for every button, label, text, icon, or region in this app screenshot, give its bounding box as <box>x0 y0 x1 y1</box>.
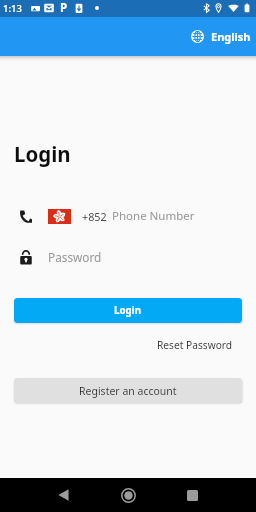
staticText: English <box>211 29 251 44</box>
staticText: Login <box>114 304 142 317</box>
staticText: P <box>60 0 68 16</box>
button[interactable]: Register an account <box>14 378 242 403</box>
button[interactable]: Login <box>14 298 242 323</box>
button[interactable]: English <box>181 23 256 50</box>
button[interactable]: Password <box>14 244 256 270</box>
button[interactable]: +852 <box>14 203 256 229</box>
button[interactable]: Home <box>111 478 145 512</box>
staticText: Phone Number <box>112 208 195 224</box>
staticText: Reset Password <box>157 338 233 352</box>
button[interactable]: Reset Password <box>152 335 238 355</box>
staticText: 1:13 <box>3 2 22 15</box>
staticText: Register an account <box>79 384 177 398</box>
staticText: Login <box>14 140 71 168</box>
staticText: +852 <box>82 209 107 224</box>
button[interactable]: Recent apps <box>175 478 209 512</box>
button[interactable]: Back <box>46 478 80 512</box>
staticText: Password <box>48 249 102 265</box>
